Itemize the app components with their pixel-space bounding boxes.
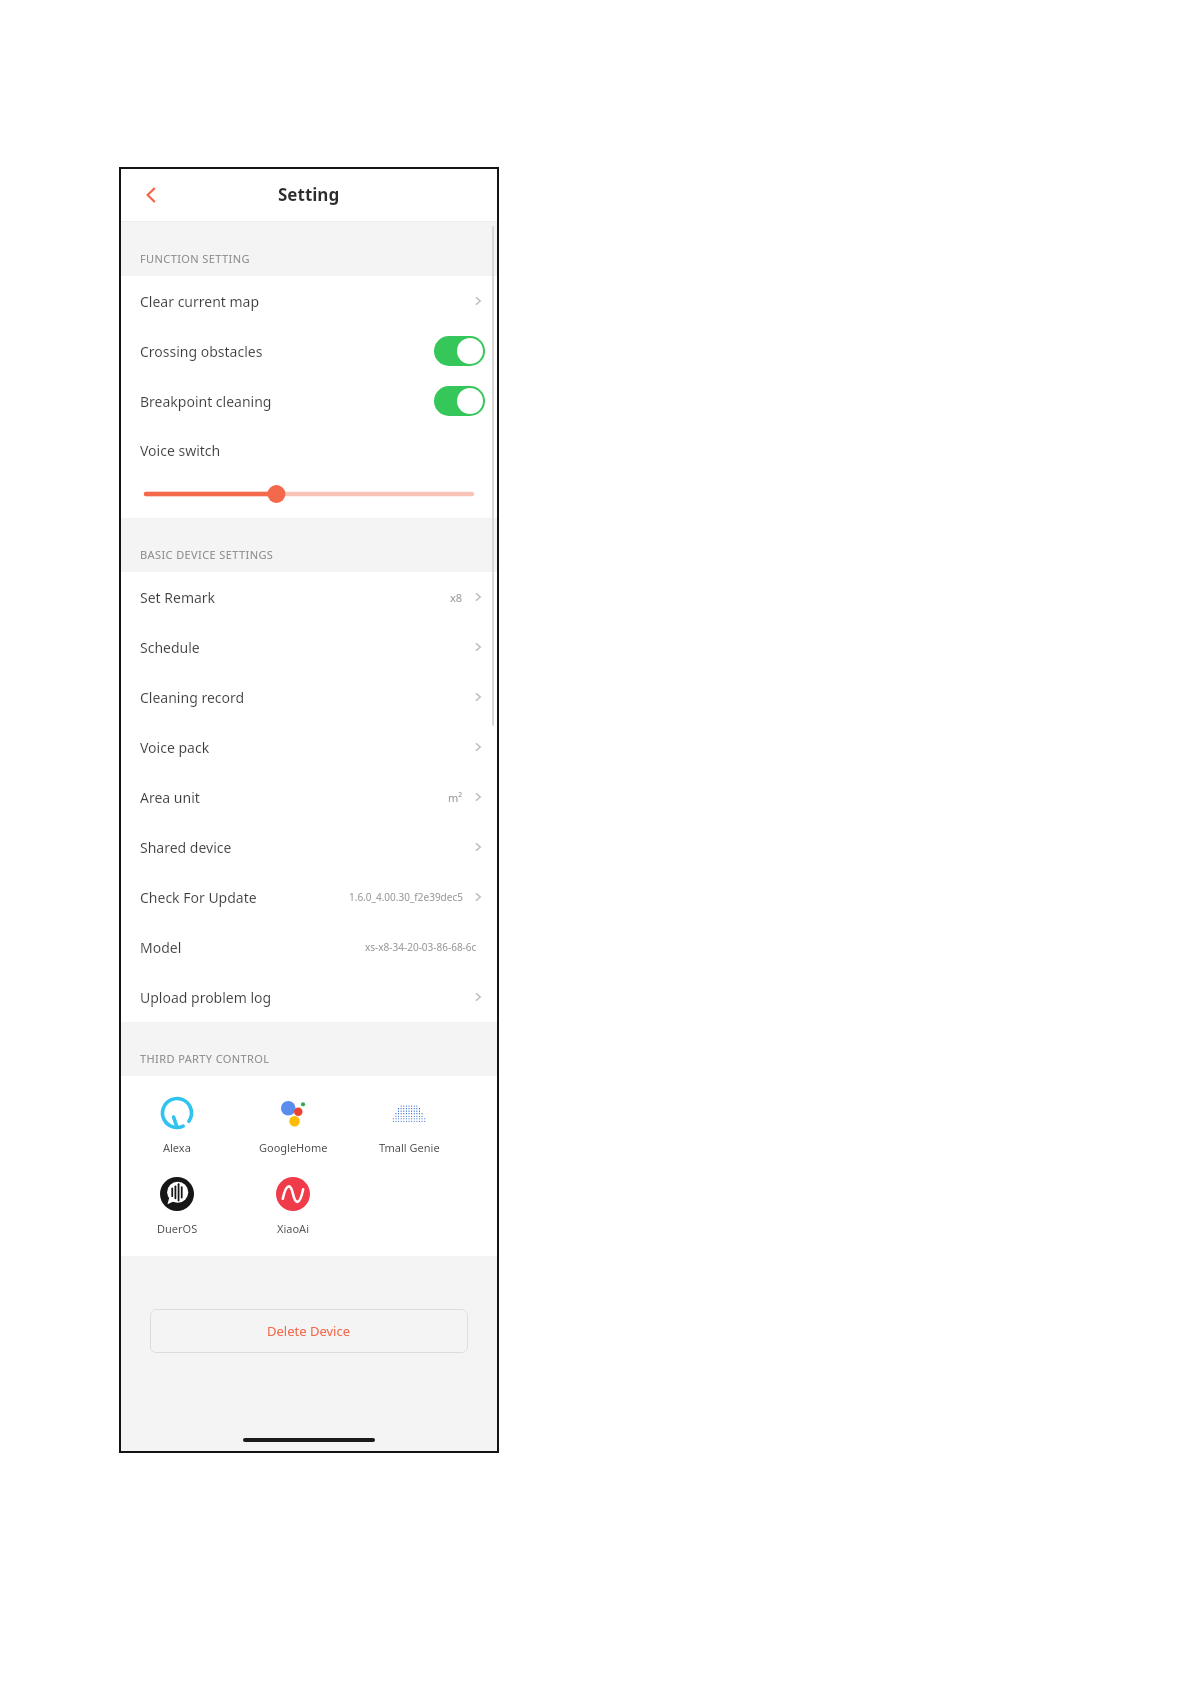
button[interactable]: Alexa [119, 1086, 235, 1161]
staticText: Breakpoint cleaning [140, 392, 272, 411]
button[interactable]: Toggle on [434, 386, 485, 416]
staticText: Upload problem log [140, 988, 272, 1007]
staticText: Cleaning record [140, 688, 245, 707]
button[interactable]: Toggle on [434, 336, 485, 366]
button[interactable]: Area unit [119, 772, 499, 822]
button[interactable]: Check For Update [119, 872, 499, 922]
staticText: BASIC DEVICE SETTINGS [140, 547, 274, 562]
staticText: Area unit [140, 788, 200, 807]
button[interactable]: Back [131, 175, 171, 215]
staticText: DuerOS [157, 1221, 198, 1236]
staticText: Clear current map [140, 292, 260, 311]
staticText: Crossing obstacles [140, 342, 263, 361]
staticText: Voice switch [140, 441, 221, 460]
button[interactable]: Voice volume slider [119, 474, 499, 514]
staticText: Alexa [163, 1140, 191, 1155]
button[interactable]: Model [119, 922, 499, 972]
button[interactable]: Set Remark [119, 572, 499, 622]
staticText: THIRD PARTY CONTROL [140, 1051, 270, 1066]
staticText: 1.6.0_4.00.30_f2e39dec5 [349, 890, 463, 904]
staticText: Check For Update [140, 888, 257, 907]
button[interactable]: Upload problem log [119, 972, 499, 1022]
button[interactable]: Clear current map [119, 276, 499, 326]
button[interactable]: Shared device [119, 822, 499, 872]
staticText: Tmall Genie [379, 1140, 440, 1155]
button[interactable]: Tmall Genie [351, 1086, 467, 1161]
staticText: Set Remark [140, 588, 216, 607]
staticText: Delete Device [267, 1322, 351, 1340]
button[interactable]: DuerOS [119, 1167, 235, 1242]
staticText: Setting [278, 183, 340, 206]
staticText: m² [448, 790, 463, 805]
button[interactable]: Schedule [119, 622, 499, 672]
staticText: Shared device [140, 838, 232, 857]
button[interactable]: Delete Device [150, 1309, 468, 1353]
staticText: x8 [450, 590, 463, 605]
staticText: GoogleHome [259, 1140, 328, 1155]
button[interactable]: Crossing obstacles [119, 326, 499, 376]
button[interactable]: GoogleHome [235, 1086, 351, 1161]
staticText: Voice pack [140, 738, 210, 757]
staticText: Model [140, 938, 182, 957]
staticText: FUNCTION SETTING [140, 251, 250, 266]
button[interactable]: XiaoAi [235, 1167, 351, 1242]
button[interactable]: Voice pack [119, 722, 499, 772]
staticText: Schedule [140, 638, 200, 657]
button[interactable]: Cleaning record [119, 672, 499, 722]
staticText: XiaoAi [277, 1221, 309, 1236]
staticText: xs-x8-34-20-03-86-68-6c [365, 940, 477, 954]
button[interactable]: Breakpoint cleaning [119, 376, 499, 426]
